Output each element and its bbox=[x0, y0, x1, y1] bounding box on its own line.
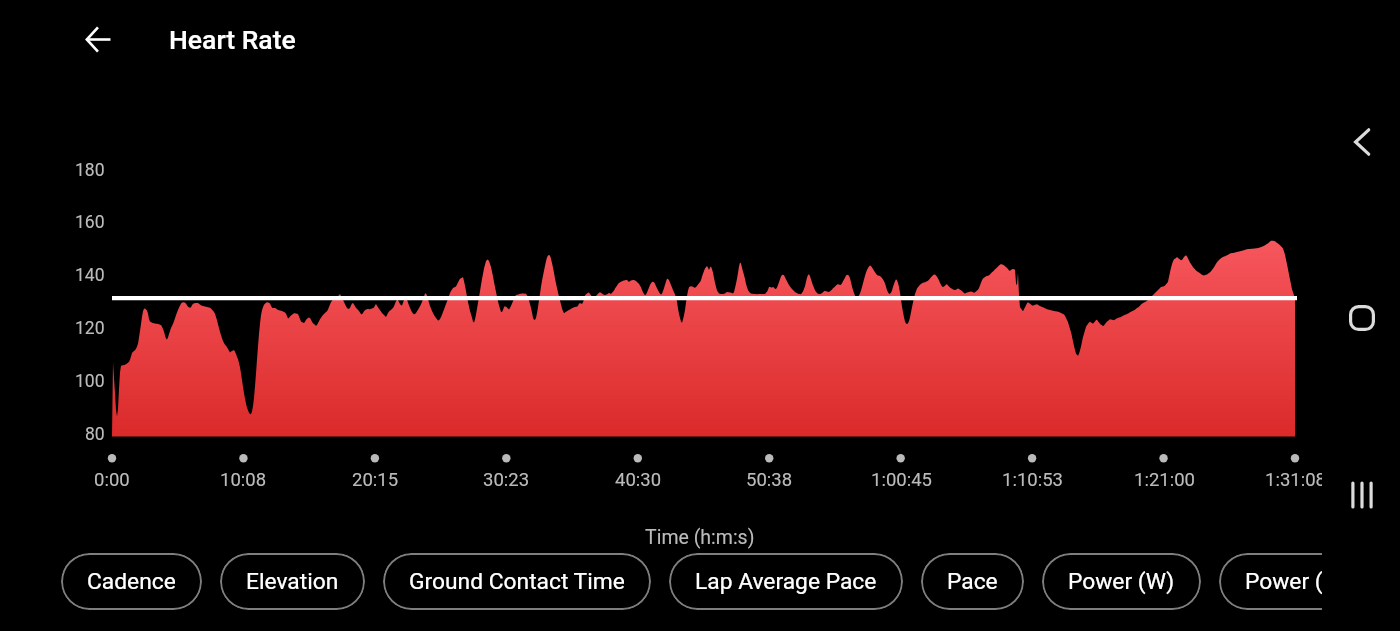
staticText: Heart Rate bbox=[169, 24, 296, 55]
staticText: 10:08 bbox=[220, 469, 267, 491]
staticText: 1:31:08 bbox=[1265, 469, 1322, 491]
staticText: Power (W) bbox=[1068, 568, 1175, 595]
button[interactable]: Lap Average Pace bbox=[669, 553, 903, 610]
staticText: Pace bbox=[947, 568, 998, 595]
button[interactable]: Navigate up bbox=[74, 15, 122, 63]
staticText: 1:10:53 bbox=[1002, 469, 1063, 491]
staticText: Power (Watts per kg) bbox=[1245, 568, 1322, 595]
button[interactable]: Back bbox=[1338, 118, 1386, 166]
button[interactable]: Power (Watts per kg) bbox=[1219, 553, 1322, 610]
button[interactable]: Home bbox=[1338, 294, 1386, 342]
staticText: 180 bbox=[75, 160, 105, 181]
button[interactable]: Cadence bbox=[61, 553, 202, 610]
staticText: 120 bbox=[75, 318, 105, 339]
button[interactable]: Ground Contact Time bbox=[383, 553, 651, 610]
staticText: Lap Average Pace bbox=[695, 568, 877, 595]
button[interactable]: Elevation bbox=[220, 553, 365, 610]
button[interactable]: Recent apps bbox=[1338, 471, 1386, 519]
staticText: 140 bbox=[75, 265, 105, 286]
staticText: Elevation bbox=[246, 568, 339, 595]
staticText: 20:15 bbox=[352, 469, 399, 491]
staticText: Time (h:m:s) bbox=[645, 526, 755, 549]
staticText: 1:00:45 bbox=[871, 469, 932, 491]
staticText: 1:21:00 bbox=[1134, 469, 1195, 491]
staticText: 0:00 bbox=[94, 469, 130, 491]
staticText: 80 bbox=[85, 424, 105, 445]
staticText: 50:38 bbox=[746, 469, 793, 491]
button[interactable]: Pace bbox=[921, 553, 1024, 610]
staticText: 100 bbox=[75, 371, 105, 392]
staticText: 30:23 bbox=[483, 469, 530, 491]
staticText: Cadence bbox=[87, 568, 176, 595]
staticText: 160 bbox=[75, 212, 105, 233]
staticText: 40:30 bbox=[615, 469, 662, 491]
staticText: Ground Contact Time bbox=[409, 568, 625, 595]
button[interactable]: Power (W) bbox=[1042, 553, 1201, 610]
